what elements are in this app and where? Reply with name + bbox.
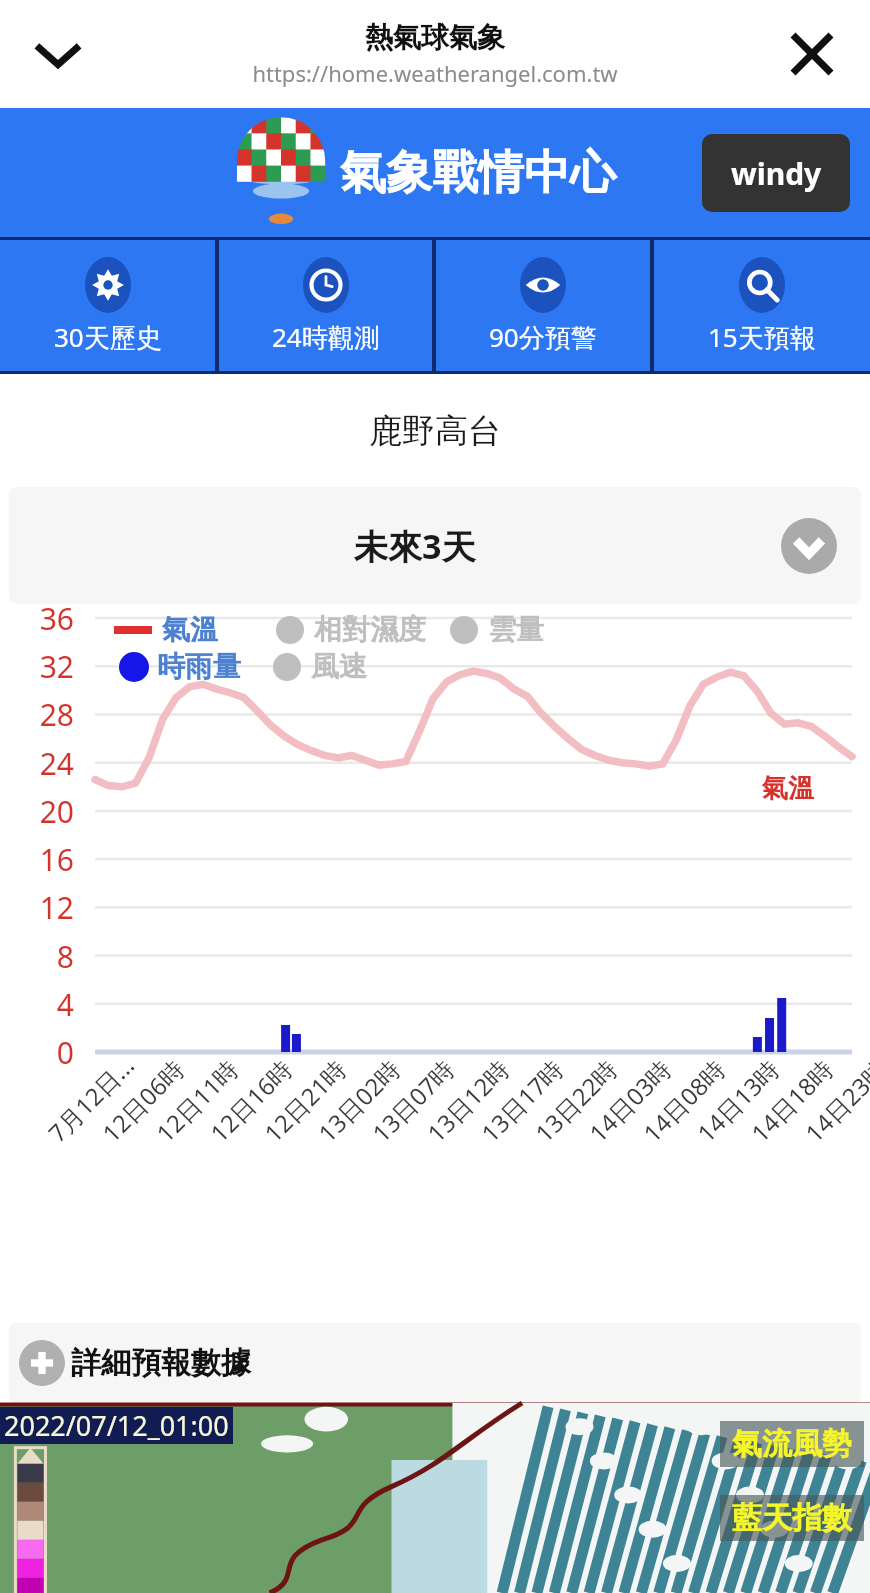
button[interactable]: Close <box>774 16 850 92</box>
button[interactable]: 未來3天 <box>9 487 861 604</box>
staticText: 24時觀測 <box>272 319 380 355</box>
staticText: 8 <box>56 936 74 977</box>
staticText: 相對濕度 <box>314 612 426 647</box>
staticText: 28 <box>39 694 74 735</box>
staticText: 2022/07/12_01:00 <box>4 1407 229 1444</box>
staticText: 36 <box>39 598 74 639</box>
button[interactable]: 氣流風勢 <box>732 1425 852 1463</box>
staticText: 24 <box>39 743 74 784</box>
button[interactable]: 詳細預報數據 <box>9 1323 861 1403</box>
staticText: https://home.weatherangel.com.tw <box>252 58 618 88</box>
staticText: 14日18時 <box>744 1032 860 1149</box>
staticText: 未來3天 <box>354 523 476 569</box>
button[interactable]: 藍天指數 <box>732 1499 852 1537</box>
staticText: 90分預警 <box>489 319 597 355</box>
staticText: 20 <box>39 791 74 832</box>
staticText: 12日21時 <box>257 1032 373 1149</box>
staticText: 氣溫 <box>162 612 218 647</box>
staticText: 14日08時 <box>636 1032 752 1149</box>
button[interactable]: Collapse <box>20 16 96 92</box>
staticText: 14日13時 <box>690 1032 806 1149</box>
staticText: 雲量 <box>488 612 544 647</box>
staticText: 氣象戰情中心 <box>340 144 616 202</box>
staticText: 藍天指數 <box>732 1499 852 1537</box>
button[interactable]: 30天歷史 <box>0 240 215 371</box>
staticText: 13日12時 <box>420 1032 536 1149</box>
staticText: 13日17時 <box>474 1032 590 1149</box>
staticText: 14日23時 <box>798 1032 870 1149</box>
staticText: 12 <box>39 887 74 928</box>
staticText: 12日16時 <box>203 1032 319 1149</box>
button[interactable]: windy <box>702 134 850 212</box>
button[interactable]: 15天預報 <box>654 240 870 371</box>
button[interactable]: 24時觀測 <box>219 240 432 371</box>
staticText: 14日03時 <box>582 1032 698 1149</box>
staticText: 13日22時 <box>528 1032 644 1149</box>
staticText: 熱氣球氣象 <box>365 20 505 55</box>
staticText: 15天預報 <box>708 319 816 355</box>
staticText: 氣溫 <box>762 772 814 805</box>
staticText: 詳細預報數據 <box>71 1344 251 1382</box>
staticText: 4 <box>56 984 74 1025</box>
staticText: 32 <box>39 646 74 687</box>
staticText: 鹿野高台 <box>369 410 501 452</box>
staticText: 7月12日... <box>41 1032 157 1149</box>
staticText: 氣流風勢 <box>732 1425 852 1463</box>
staticText: 16 <box>39 839 74 880</box>
staticText: 時雨量 <box>157 649 241 684</box>
staticText: 0 <box>56 1032 74 1073</box>
staticText: 12日06時 <box>95 1032 211 1149</box>
staticText: 風速 <box>311 649 367 684</box>
staticText: 13日02時 <box>311 1032 427 1149</box>
staticText: windy <box>731 153 822 194</box>
button[interactable]: 90分預警 <box>436 240 650 371</box>
staticText: 13日07時 <box>365 1032 481 1149</box>
staticText: 12日11時 <box>149 1032 265 1149</box>
staticText: 30天歷史 <box>54 319 162 355</box>
